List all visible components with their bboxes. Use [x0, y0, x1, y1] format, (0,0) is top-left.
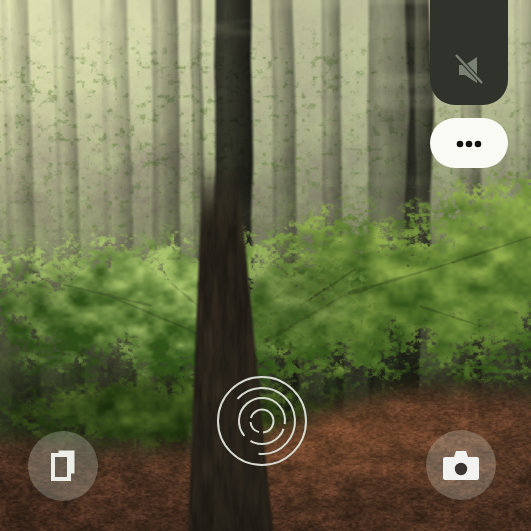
button[interactable]: Mute: [430, 0, 508, 105]
button[interactable]: Take photo: [426, 430, 496, 500]
button[interactable]: More options: [430, 118, 508, 168]
button[interactable]: Focus: [217, 376, 307, 466]
button[interactable]: Gallery: [28, 431, 98, 501]
